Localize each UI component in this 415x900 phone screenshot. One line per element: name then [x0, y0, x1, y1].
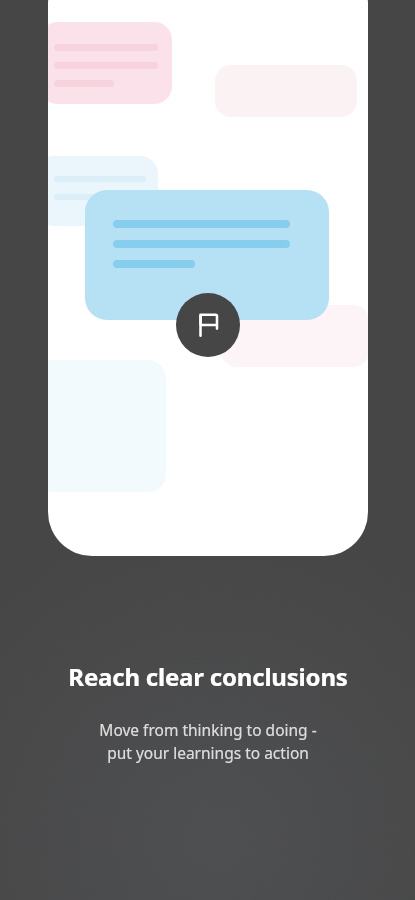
- staticText: Move from thinking to doing - put your l…: [99, 719, 317, 764]
- button[interactable]: Flag: [176, 293, 240, 357]
- button[interactable]: [85, 190, 329, 320]
- staticText: Reach clear conclusions: [68, 660, 348, 693]
